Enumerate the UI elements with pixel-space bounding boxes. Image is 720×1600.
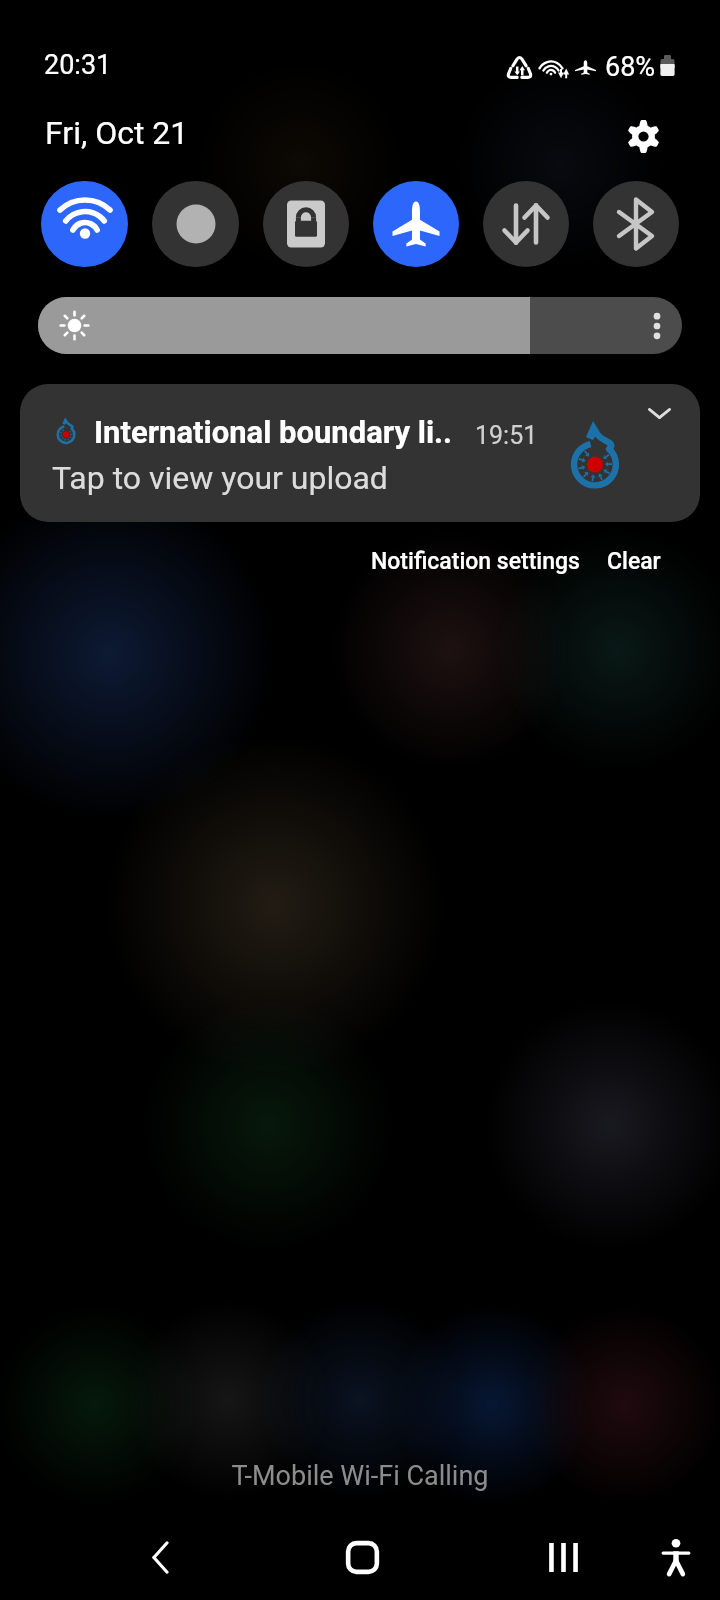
button[interactable]: Back [59,1514,261,1600]
staticText: 68% [605,51,656,83]
staticText: Tap to view your upload [52,459,388,497]
button[interactable]: Wi-Fi [41,181,128,267]
staticText: T-Mobile Wi-Fi Calling [0,1460,720,1492]
staticText: 20:31 [44,49,112,81]
button[interactable]: Quick settings [619,112,667,160]
button[interactable]: Brightness [38,297,682,354]
button[interactable]: Sound [152,181,239,267]
button[interactable]: Flight mode [373,181,459,267]
button[interactable]: Clear [599,543,669,580]
staticText: Clear [607,548,661,575]
button[interactable]: Notification settings [363,543,588,580]
button[interactable]: Accessibility [640,1521,712,1593]
staticText: Fri, Oct 21 [45,114,189,152]
button[interactable]: Bluetooth [593,181,679,267]
button[interactable]: Secure Folder [263,181,349,267]
staticText: Notification settings [371,548,580,575]
button[interactable]: Recent apps [462,1514,664,1600]
button[interactable]: Home [261,1514,463,1600]
button[interactable]: Mobile data [483,181,569,267]
button[interactable]: International boundary li.. [20,384,700,522]
staticText: 19:51 [475,421,538,450]
staticText: International boundary li.. [94,414,453,450]
button[interactable]: Expand notification [629,384,689,442]
